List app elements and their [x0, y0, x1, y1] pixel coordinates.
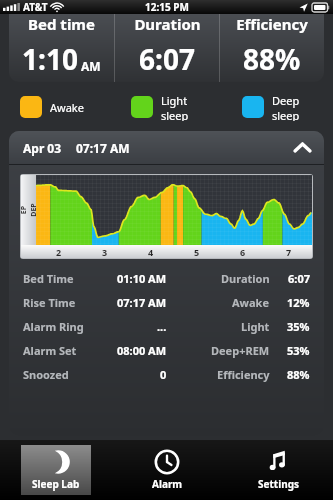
- staticText: 1:10: [22, 40, 78, 78]
- staticText: 12:15 PM: [145, 0, 189, 14]
- staticText: sleep: [272, 108, 300, 121]
- button[interactable]: Bed Time: [23, 266, 310, 290]
- staticText: Deep: [272, 93, 300, 108]
- staticText: AT&T: [23, 0, 48, 14]
- staticText: Awake: [232, 295, 270, 310]
- staticText: ...: [157, 319, 167, 334]
- staticText: 3: [102, 246, 108, 258]
- button[interactable]: Alarm Ring: [23, 314, 310, 338]
- staticText: Duration: [134, 14, 201, 34]
- button[interactable]: Alarm: [132, 445, 202, 495]
- other: Collapse: [295, 143, 310, 152]
- staticText: 07:17 AM: [76, 140, 130, 156]
- staticText: Snoozed: [23, 367, 69, 382]
- staticText: Alarm Set: [23, 343, 77, 358]
- button[interactable]: Snoozed: [23, 362, 310, 386]
- button[interactable]: Deep: [242, 93, 333, 121]
- staticText: sleep: [161, 108, 189, 121]
- button[interactable]: Settings: [243, 445, 313, 495]
- staticText: Light: [161, 93, 188, 108]
- staticText: Sleep Lab: [32, 477, 80, 491]
- staticText: 6: [240, 246, 246, 258]
- staticText: 12%: [287, 295, 310, 310]
- staticText: Bed Time: [23, 271, 74, 286]
- staticText: Alarm Ring: [23, 319, 84, 334]
- button[interactable]: Apr 03: [9, 131, 324, 164]
- staticText: 0: [160, 367, 167, 382]
- staticText: Alarm: [152, 477, 183, 491]
- staticText: Deep+REM: [211, 343, 270, 358]
- staticText: AM: [81, 58, 101, 74]
- staticText: 35%: [287, 319, 310, 334]
- staticText: 07:17 AM: [117, 295, 167, 310]
- staticText: 2: [56, 246, 62, 258]
- staticText: 88%: [287, 367, 310, 382]
- staticText: Awake: [50, 100, 84, 115]
- staticText: 4: [148, 246, 154, 258]
- button[interactable]: Light: [131, 93, 222, 121]
- staticText: Duration: [221, 271, 270, 286]
- staticText: Efficiency: [217, 367, 270, 382]
- button[interactable]: Bed time: [9, 14, 114, 82]
- staticText: 7: [286, 246, 292, 258]
- staticText: Settings: [258, 477, 299, 491]
- staticText: Apr 03: [23, 140, 62, 156]
- staticText: 5: [194, 246, 200, 258]
- staticText: 6:07: [139, 40, 195, 78]
- staticText: 08:00 AM: [117, 343, 167, 358]
- staticText: 88%: [243, 40, 301, 78]
- button[interactable]: Rise Time: [23, 290, 310, 314]
- staticText: SLEEP DEPTH: [20, 202, 48, 217]
- staticText: Rise Time: [23, 295, 76, 310]
- staticText: Bed time: [28, 14, 95, 34]
- button[interactable]: Alarm Set: [23, 338, 310, 362]
- staticText: 6:07: [288, 271, 310, 286]
- button[interactable]: Awake: [20, 93, 111, 121]
- staticText: 53%: [287, 343, 310, 358]
- button[interactable]: Efficiency: [220, 14, 324, 82]
- staticText: Light: [241, 319, 270, 334]
- button[interactable]: Duration: [115, 14, 219, 82]
- staticText: Efficiency: [236, 14, 308, 34]
- staticText: 01:10 AM: [117, 271, 167, 286]
- button[interactable]: Sleep Lab: [21, 445, 91, 495]
